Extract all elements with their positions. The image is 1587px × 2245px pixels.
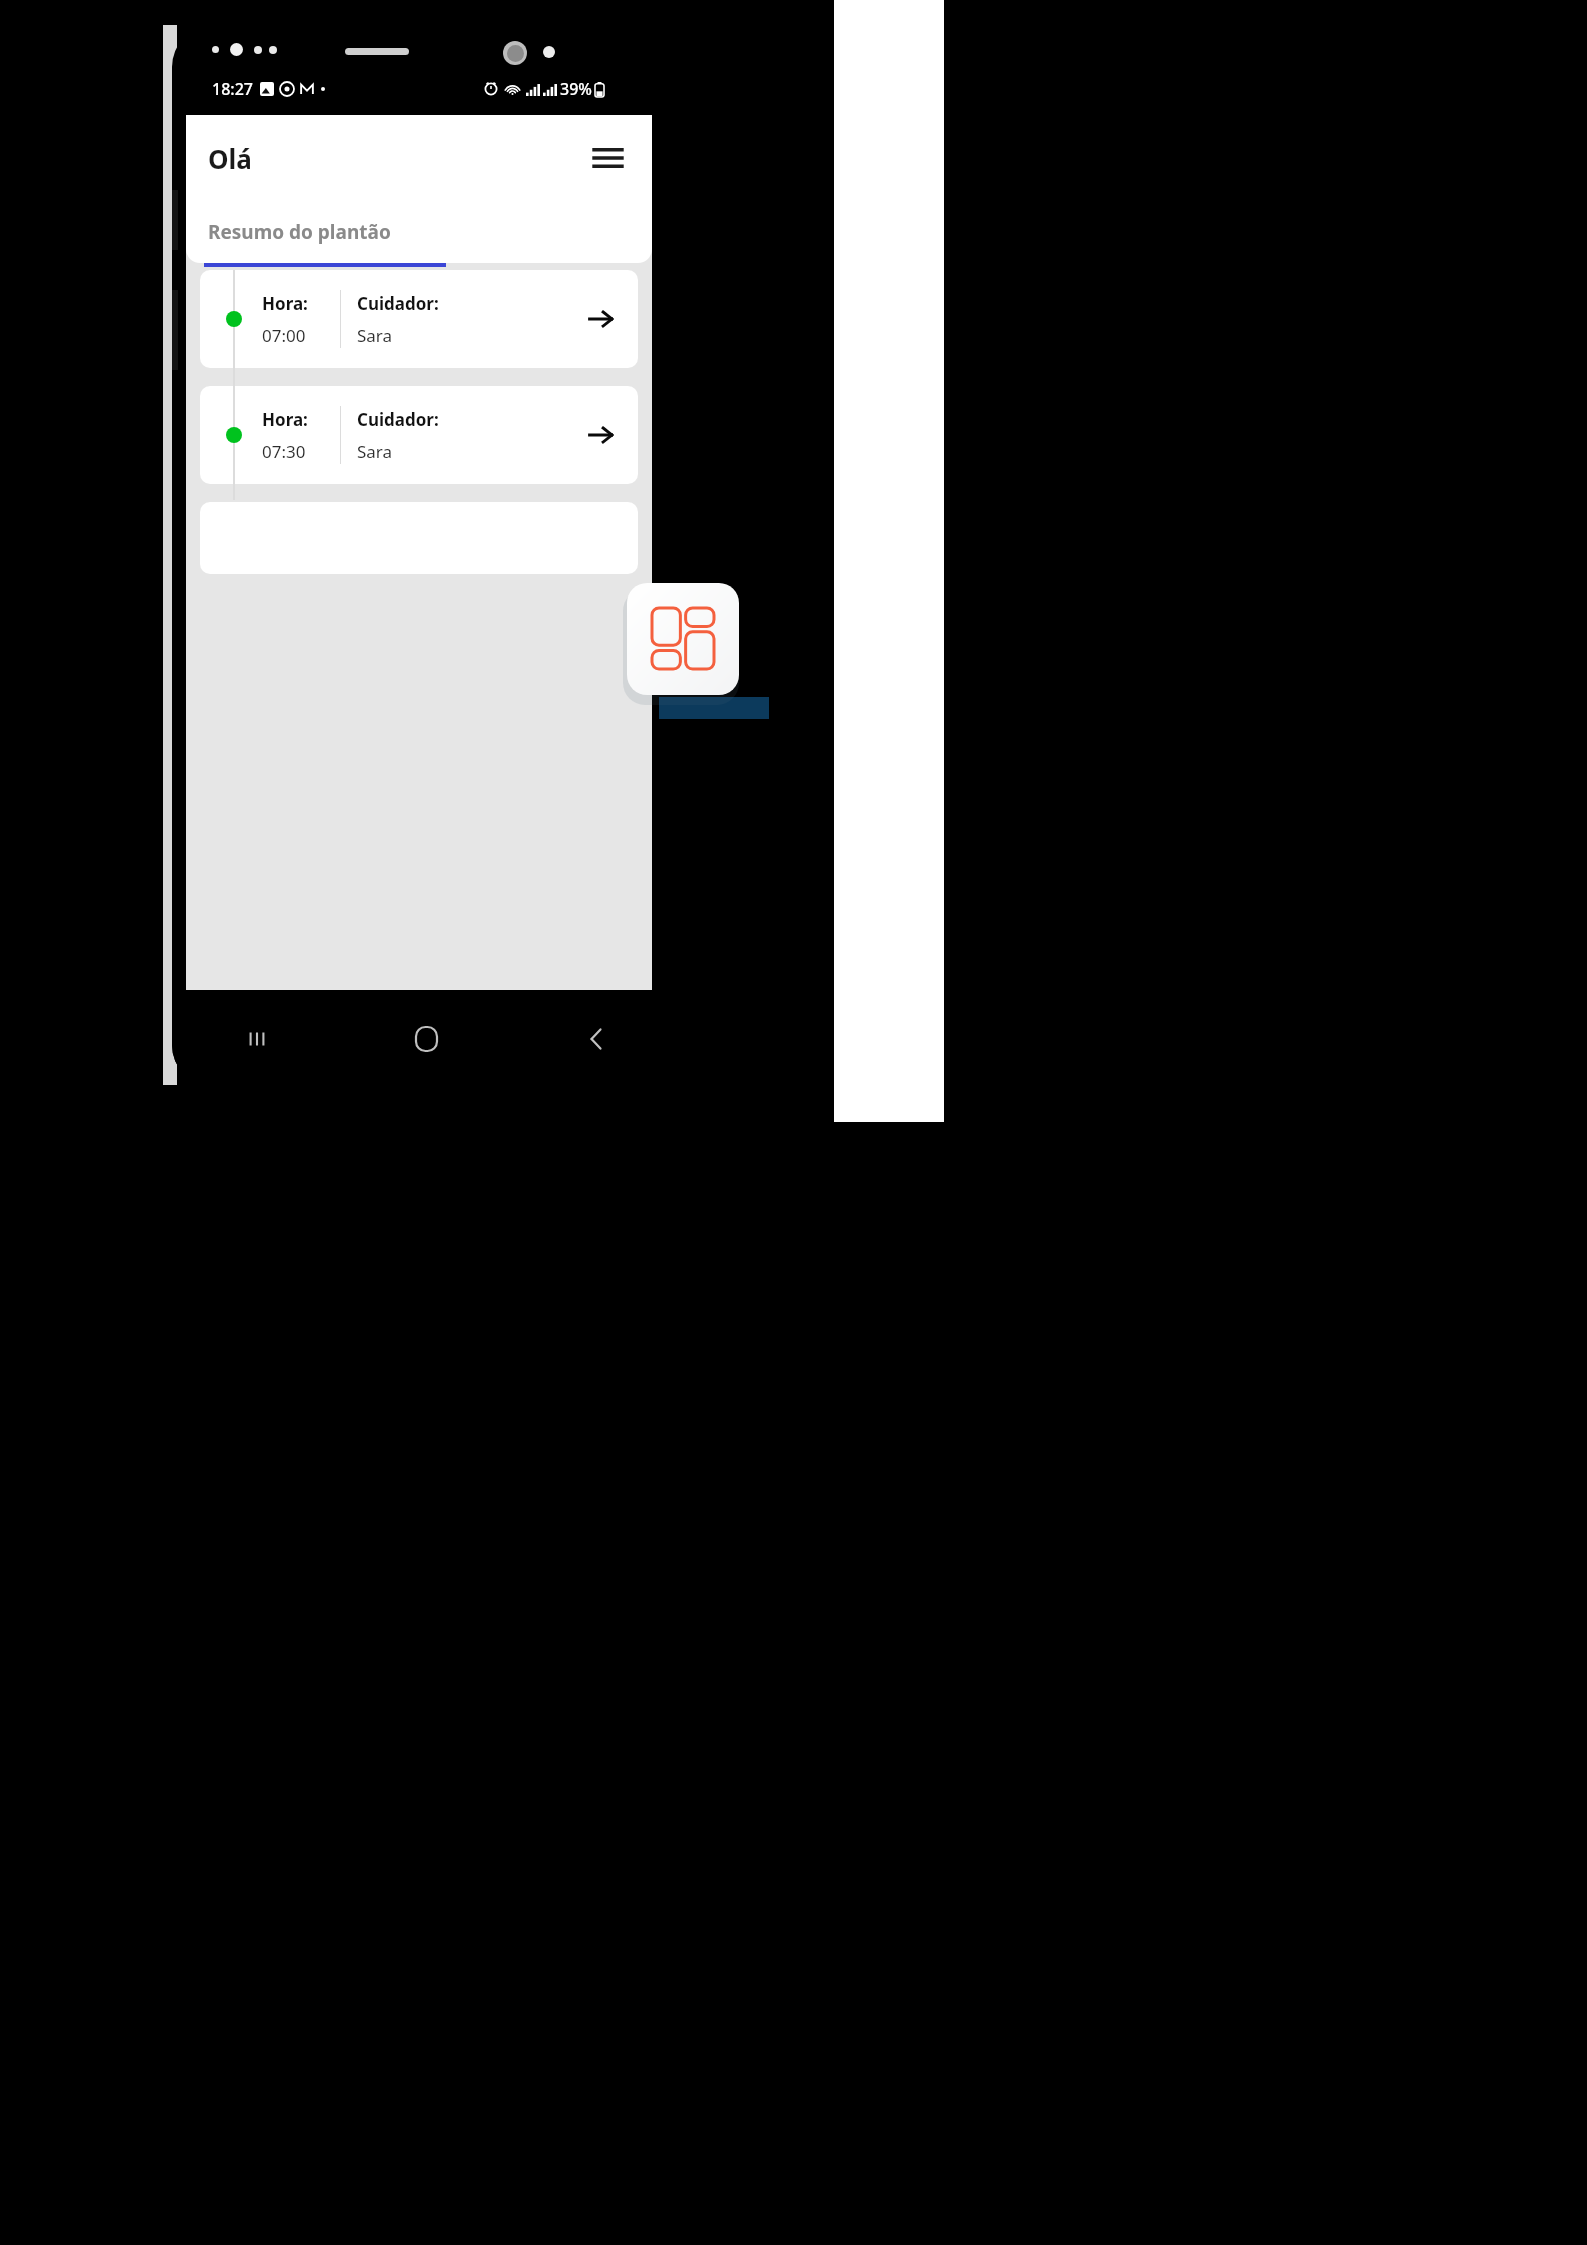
staticText: 07:00 [262,324,306,347]
staticText: Cuidador: [357,292,439,315]
button[interactable]: Widgets [627,583,739,695]
staticText: Sara [357,440,393,463]
staticText: Resumo do plantão [208,219,391,245]
button[interactable]: Voltar [511,990,680,1087]
button[interactable]: Abrir detalhes [580,414,622,456]
button[interactable]: Recentes [172,990,342,1087]
button[interactable]: Menu [586,136,630,180]
button[interactable]: Hora: [200,270,638,368]
button[interactable]: Abrir detalhes [580,298,622,340]
staticText: 39% [560,78,592,100]
staticText: Olá [208,141,252,176]
button[interactable]: Início [342,990,511,1087]
staticText: 07:30 [262,440,306,463]
button[interactable]: Hora: [200,386,638,484]
staticText: 18:27 [212,78,253,100]
staticText: Sara [357,324,393,347]
staticText: Hora: [262,292,308,315]
staticText: Hora: [262,408,308,431]
staticText: Cuidador: [357,408,439,431]
button[interactable]: Resumo do plantão [186,201,428,263]
